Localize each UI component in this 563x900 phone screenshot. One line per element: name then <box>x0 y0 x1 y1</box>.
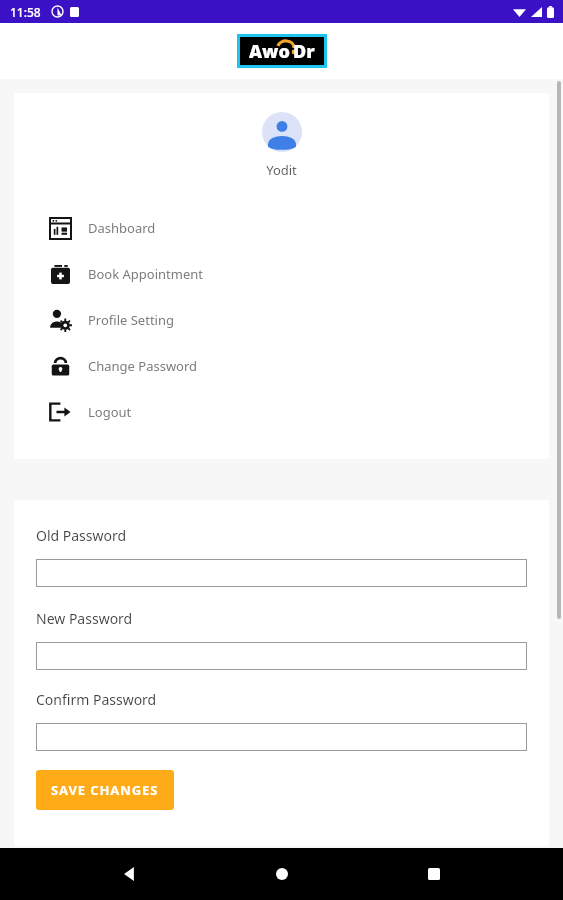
staticText: New Password <box>36 609 133 628</box>
staticText: Dashboard <box>88 219 156 237</box>
button[interactable]: Home <box>258 850 306 898</box>
staticText: Confirm Password <box>36 690 157 709</box>
button[interactable] <box>36 642 527 670</box>
button[interactable]: SAVE CHANGES <box>36 770 174 810</box>
staticText: Logout <box>88 403 132 421</box>
button[interactable] <box>36 559 527 587</box>
staticText: 11:58 <box>10 4 41 20</box>
staticText: Dr <box>293 39 315 64</box>
staticText: Old Password <box>36 526 127 545</box>
button[interactable]: Dashboard <box>14 205 549 251</box>
button[interactable]: Recent apps <box>410 850 458 898</box>
staticText: Yodit <box>14 161 549 179</box>
staticText: SAVE CHANGES <box>51 781 159 799</box>
staticText: Awo <box>249 39 290 64</box>
button[interactable]: Back <box>105 850 153 898</box>
button[interactable] <box>36 723 527 751</box>
button[interactable]: Profile Setting <box>14 297 549 343</box>
button[interactable]: Book Appointment <box>14 251 549 297</box>
staticText: Profile Setting <box>88 311 174 329</box>
button[interactable]: Logout <box>14 389 549 435</box>
staticText: Change Password <box>88 357 198 375</box>
button[interactable]: Change Password <box>14 343 549 389</box>
button[interactable]: AwoDr logo <box>240 37 324 65</box>
staticText: Book Appointment <box>88 265 203 283</box>
